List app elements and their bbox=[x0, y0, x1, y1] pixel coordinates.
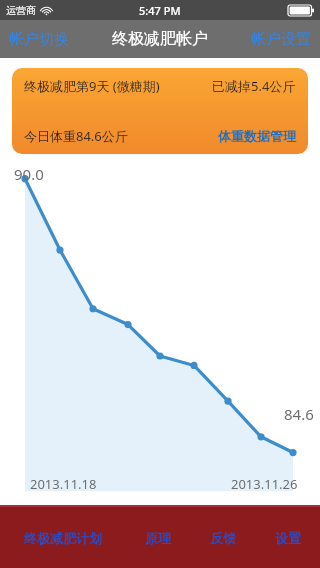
staticText: 5:47 PM bbox=[139, 3, 181, 18]
staticText: 原理 bbox=[145, 530, 171, 546]
staticText: 体重数据管理 bbox=[218, 128, 296, 144]
staticText: 2013.11.26 bbox=[231, 475, 298, 493]
staticText: 运营商 bbox=[6, 4, 36, 17]
button[interactable]: 体重数据管理 bbox=[218, 128, 296, 144]
staticText: 已减掉5.4公斤 bbox=[212, 77, 296, 95]
button[interactable]: 帐户切换 bbox=[0, 20, 78, 58]
button[interactable]: 终极减肥第9天 (微糖期) bbox=[12, 68, 308, 154]
staticText: 帐户设置 bbox=[251, 30, 311, 49]
button[interactable]: 设置 bbox=[255, 507, 320, 568]
staticText: 反馈 bbox=[210, 530, 236, 546]
button[interactable]: 反馈 bbox=[190, 507, 255, 568]
button[interactable]: 原理 bbox=[125, 507, 190, 568]
staticText: 帐户切换 bbox=[9, 30, 69, 49]
staticText: 2013.11.18 bbox=[30, 475, 97, 493]
staticText: 终极减肥计划 bbox=[24, 530, 102, 546]
button[interactable]: 终极减肥计划 bbox=[0, 507, 125, 568]
button[interactable]: 帐户设置 bbox=[242, 20, 320, 58]
staticText: 84.6 bbox=[284, 404, 314, 424]
staticText: 终极减肥第9天 (微糖期) bbox=[24, 77, 160, 95]
staticText: 今日体重84.6公斤 bbox=[24, 127, 128, 145]
staticText: 设置 bbox=[275, 530, 301, 546]
staticText: 90.0 bbox=[14, 164, 44, 184]
staticText: 终极减肥帐户 bbox=[112, 29, 208, 49]
